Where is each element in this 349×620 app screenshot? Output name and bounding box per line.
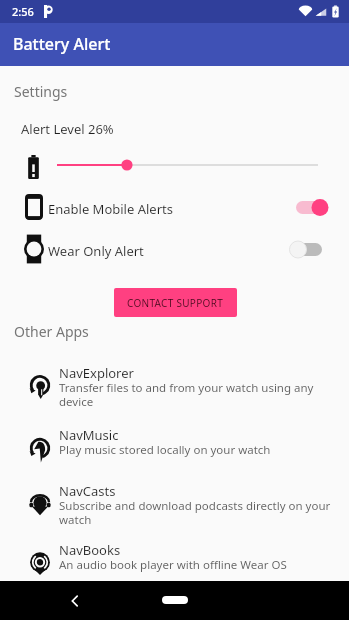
staticText: Subscribe and download podcasts directly… bbox=[59, 498, 333, 527]
button[interactable] bbox=[0, 542, 349, 598]
staticText: Wear Only Alert bbox=[48, 242, 144, 260]
button[interactable] bbox=[50, 153, 325, 177]
staticText: Play music stored locally on your watch bbox=[59, 442, 333, 458]
staticText: Other Apps bbox=[14, 322, 89, 341]
staticText: NavMusic bbox=[59, 426, 119, 444]
staticText: Settings bbox=[14, 82, 68, 101]
button[interactable] bbox=[0, 189, 349, 227]
button[interactable] bbox=[0, 427, 349, 483]
button[interactable]: Back bbox=[64, 590, 86, 612]
button[interactable]: Home bbox=[162, 596, 188, 604]
button[interactable] bbox=[0, 365, 349, 421]
staticText: Enable Mobile Alerts bbox=[48, 200, 173, 218]
staticText: CONTACT SUPPORT bbox=[127, 296, 224, 310]
staticText: 2:56 bbox=[12, 4, 34, 19]
staticText: NavCasts bbox=[59, 482, 116, 500]
staticText: Alert Level 26% bbox=[21, 120, 114, 138]
staticText: NavBooks bbox=[59, 541, 121, 559]
staticText: Battery Alert bbox=[13, 33, 111, 55]
staticText: An audio book player with offline Wear O… bbox=[59, 557, 333, 573]
button[interactable] bbox=[0, 230, 349, 268]
staticText: Transfer files to and from your watch us… bbox=[59, 380, 333, 409]
button[interactable]: CONTACT SUPPORT bbox=[114, 288, 237, 317]
button[interactable] bbox=[0, 483, 349, 539]
staticText: NavExplorer bbox=[59, 364, 134, 382]
